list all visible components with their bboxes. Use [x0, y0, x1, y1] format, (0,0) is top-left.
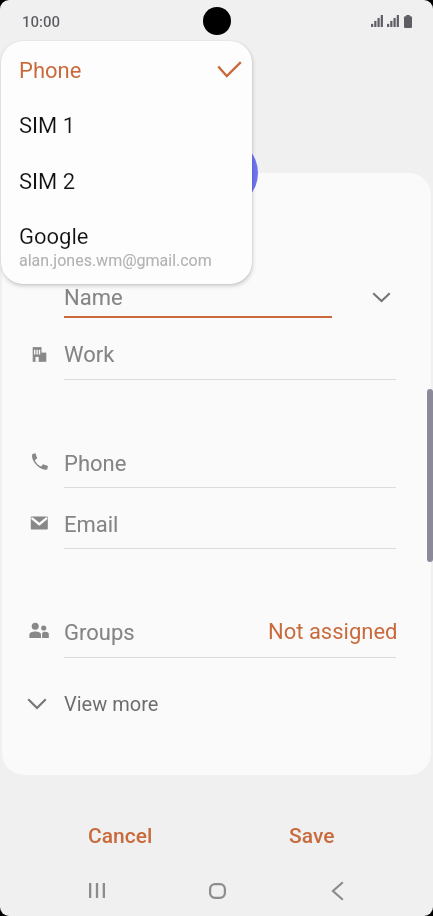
staticText: Google: [19, 224, 89, 250]
staticText: Phone: [19, 58, 82, 84]
staticText: Name: [64, 285, 123, 311]
button[interactable]: SIM 1: [1, 99, 252, 155]
button[interactable]: Back: [277, 865, 397, 916]
staticText: Cancel: [88, 824, 153, 849]
staticText: Groups: [64, 620, 135, 646]
staticText: Phone: [64, 451, 127, 477]
button[interactable]: Save: [216, 800, 408, 872]
staticText: Email: [64, 512, 119, 538]
button[interactable]: SIM 2: [1, 155, 252, 211]
staticText: alan.jones.wm@gmail.com: [19, 251, 212, 270]
staticText: 10:00: [22, 13, 61, 31]
staticText: View more: [64, 692, 159, 715]
button[interactable]: Google: [1, 212, 252, 270]
button[interactable]: Recent apps: [36, 865, 157, 916]
staticText: Work: [64, 342, 115, 368]
button[interactable]: View more: [2, 676, 431, 730]
staticText: SIM 2: [19, 169, 76, 195]
button[interactable]: Cancel: [25, 800, 216, 872]
staticText: Not assigned: [268, 619, 398, 645]
button[interactable]: Phone: [1, 41, 252, 97]
staticText: Save: [289, 824, 335, 849]
button[interactable]: Home: [157, 865, 277, 916]
staticText: SIM 1: [19, 113, 76, 139]
button[interactable]: Not assigned: [202, 612, 398, 652]
button[interactable]: Expand name fields: [351, 271, 409, 323]
